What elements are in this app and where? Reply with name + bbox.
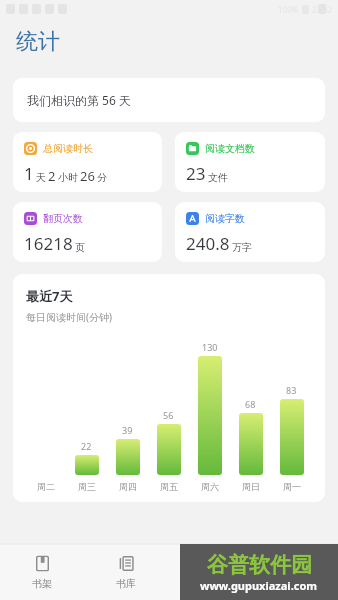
- staticText: 分: [97, 171, 107, 184]
- staticText: 书库: [116, 577, 136, 590]
- staticText: 2: [48, 167, 56, 185]
- staticText: 56: [163, 409, 174, 421]
- staticText: 我们相识的第 56 天: [27, 92, 131, 108]
- staticText: 23: [186, 162, 206, 185]
- button[interactable]: 我的: [253, 544, 338, 600]
- staticText: 万字: [232, 241, 252, 254]
- staticText: 68: [245, 398, 256, 410]
- staticText: 22:42: [312, 4, 333, 15]
- staticText: 240.8: [186, 232, 230, 255]
- staticText: 周三: [78, 481, 96, 492]
- button[interactable]: 总阅读时长: [13, 132, 162, 192]
- button[interactable]: 我们相识的第 56 天: [13, 78, 325, 122]
- staticText: 周一: [283, 481, 301, 492]
- staticText: 书架: [32, 577, 52, 590]
- button[interactable]: 阅读文档数: [175, 132, 325, 192]
- button[interactable]: 统计: [168, 544, 253, 600]
- staticText: 我的: [286, 577, 306, 590]
- staticText: 统计: [16, 28, 60, 56]
- staticText: 阅读字数: [205, 212, 245, 225]
- staticText: 阅读文档数: [205, 142, 255, 155]
- staticText: 周二: [37, 481, 55, 492]
- staticText: 周四: [119, 481, 137, 492]
- staticText: 1: [24, 162, 34, 185]
- staticText: 130: [202, 341, 218, 353]
- button[interactable]: 最近7天: [13, 274, 325, 502]
- staticText: 26: [80, 167, 95, 185]
- button[interactable]: 书架: [0, 544, 84, 600]
- staticText: 周五: [160, 481, 178, 492]
- staticText: 最近7天: [26, 287, 73, 305]
- button[interactable]: 翻页次数: [13, 202, 162, 262]
- staticText: 统计: [201, 577, 221, 590]
- staticText: 16218: [24, 232, 73, 255]
- staticText: 周六: [201, 481, 219, 492]
- staticText: 39: [122, 424, 133, 436]
- staticText: 每日阅读时间(分钟): [26, 310, 112, 324]
- staticText: 页: [75, 241, 85, 254]
- staticText: 83: [286, 384, 297, 396]
- staticText: 周日: [242, 481, 260, 492]
- staticText: 文件: [208, 171, 228, 184]
- button[interactable]: 书库: [84, 544, 168, 600]
- staticText: 天: [36, 171, 46, 184]
- staticText: 谷普软件园: [207, 552, 312, 578]
- staticText: 总阅读时长: [43, 142, 93, 155]
- staticText: www.gupuxiazai.com: [200, 578, 318, 593]
- button[interactable]: 阅读字数: [175, 202, 325, 262]
- staticText: 100%: [278, 4, 299, 15]
- staticText: 22: [81, 440, 92, 452]
- staticText: 翻页次数: [43, 212, 83, 225]
- staticText: 小时: [58, 171, 78, 184]
